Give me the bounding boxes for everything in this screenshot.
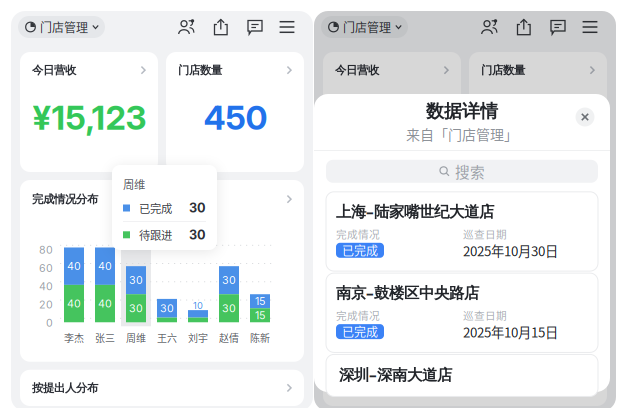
staticText: 40 — [98, 260, 112, 273]
staticText: 陈新 — [553, 330, 573, 345]
staticText: 40 — [401, 260, 415, 273]
button[interactable]: Contacts — [169, 16, 204, 38]
staticText: 门店管理 — [343, 18, 391, 36]
staticText: 门店数量 — [178, 63, 222, 77]
staticText: 赵倩 — [522, 330, 542, 345]
staticText: 数据详情 — [426, 100, 498, 123]
staticText: 陈新 — [250, 330, 270, 345]
staticText: 完成情况分布 — [335, 192, 401, 206]
staticText: ¥15,123 — [32, 97, 146, 138]
staticText: 周维 — [123, 176, 145, 192]
staticText: 按提出人分布 — [335, 381, 401, 395]
button[interactable]: Close — [571, 103, 599, 131]
button[interactable]: Messages — [238, 16, 272, 38]
button[interactable]: Menu — [575, 16, 605, 38]
staticText: 门店数量 — [481, 63, 525, 77]
staticText: 今日营收 — [335, 63, 379, 77]
staticText: 15 — [255, 295, 265, 308]
button[interactable]: 按提出人分布 — [20, 370, 304, 406]
staticText: 80 — [342, 243, 356, 256]
staticText: 30 — [463, 302, 477, 315]
staticText: 王六 — [157, 330, 177, 345]
staticText: 30 — [129, 274, 143, 287]
button[interactable]: 搜索 — [326, 160, 598, 183]
staticText: 门店管理 — [40, 18, 88, 36]
button[interactable]: 完成情况分布 — [323, 180, 607, 362]
staticText: 已完成 — [342, 323, 378, 340]
staticText: 40 — [39, 280, 53, 293]
button[interactable]: Messages — [541, 16, 575, 38]
button[interactable]: Contacts — [472, 16, 507, 38]
button[interactable]: 按提出人分布 — [323, 370, 607, 406]
staticText: 80 — [39, 243, 53, 256]
staticText: 李杰 — [64, 330, 84, 345]
staticText: 30 — [189, 227, 206, 242]
staticText: 巡查日期 — [463, 226, 507, 241]
staticText: 40 — [370, 297, 384, 310]
staticText: 30 — [189, 200, 206, 216]
staticText: 赵倩 — [219, 330, 239, 345]
staticText: 已完成 — [342, 242, 378, 259]
staticText: 李杰 — [367, 330, 387, 345]
staticText: 30 — [129, 302, 143, 315]
staticText: 10 — [193, 300, 203, 311]
button[interactable]: 完成情况分布 — [20, 180, 304, 362]
staticText: 刘宇 — [491, 330, 511, 345]
button[interactable]: 南京–鼓楼区中央路店 — [326, 273, 598, 352]
staticText: 张三 — [95, 330, 115, 345]
staticText: 60 — [342, 262, 356, 274]
staticText: 待跟进 — [139, 227, 172, 243]
staticText: 40 — [67, 260, 81, 273]
staticText: 今日营收 — [32, 63, 76, 77]
staticText: 南京–鼓楼区中央路店 — [336, 282, 479, 303]
button[interactable]: 门店管理 — [321, 16, 408, 38]
staticText: 40 — [401, 297, 415, 310]
staticText: 按提出人分布 — [32, 381, 98, 395]
staticText: 已完成 — [139, 200, 172, 216]
staticText: 450 — [203, 97, 267, 138]
button[interactable]: 门店数量 — [469, 52, 607, 172]
staticText: 王六 — [460, 330, 480, 345]
staticText: 0 — [46, 316, 53, 329]
staticText: 深圳–深南大道店 — [339, 364, 452, 385]
button[interactable]: 门店管理 — [18, 16, 105, 38]
button[interactable]: 门店数量 — [166, 52, 304, 172]
button[interactable]: 上海–陆家嘴世纪大道店 — [326, 192, 598, 271]
button[interactable]: 深圳–深南大道店 — [326, 354, 598, 396]
staticText: 40 — [67, 297, 81, 310]
staticText: 20 — [39, 298, 53, 311]
staticText: 15 — [255, 309, 265, 322]
staticText: 30 — [160, 302, 174, 315]
staticText: 0 — [349, 316, 356, 329]
button[interactable]: 今日营收 — [20, 52, 158, 172]
staticText: 刘宇 — [188, 330, 208, 345]
staticText: ¥15,123 — [335, 97, 449, 138]
staticText: 完成情况 — [336, 226, 380, 241]
staticText: 完成情况分布 — [32, 192, 98, 206]
staticText: 20 — [342, 298, 356, 311]
staticText: 40 — [342, 280, 356, 293]
staticText: 2025年10月15日 — [463, 322, 558, 341]
button[interactable]: 今日营收 — [323, 52, 461, 172]
staticText: 周维 — [126, 330, 146, 345]
staticText: 上海–陆家嘴世纪大道店 — [336, 201, 494, 222]
staticText: 40 — [98, 297, 112, 310]
button[interactable]: Menu — [272, 16, 302, 38]
button[interactable]: Share — [204, 16, 238, 38]
staticText: 60 — [39, 262, 53, 274]
staticText: 40 — [370, 260, 384, 273]
button[interactable]: Share — [507, 16, 541, 38]
staticText: 搜索 — [455, 161, 485, 182]
staticText: 450 — [506, 97, 570, 138]
staticText: 完成情况 — [336, 307, 380, 323]
staticText: 30 — [222, 302, 236, 315]
staticText: 来自「门店管理」 — [406, 124, 518, 144]
